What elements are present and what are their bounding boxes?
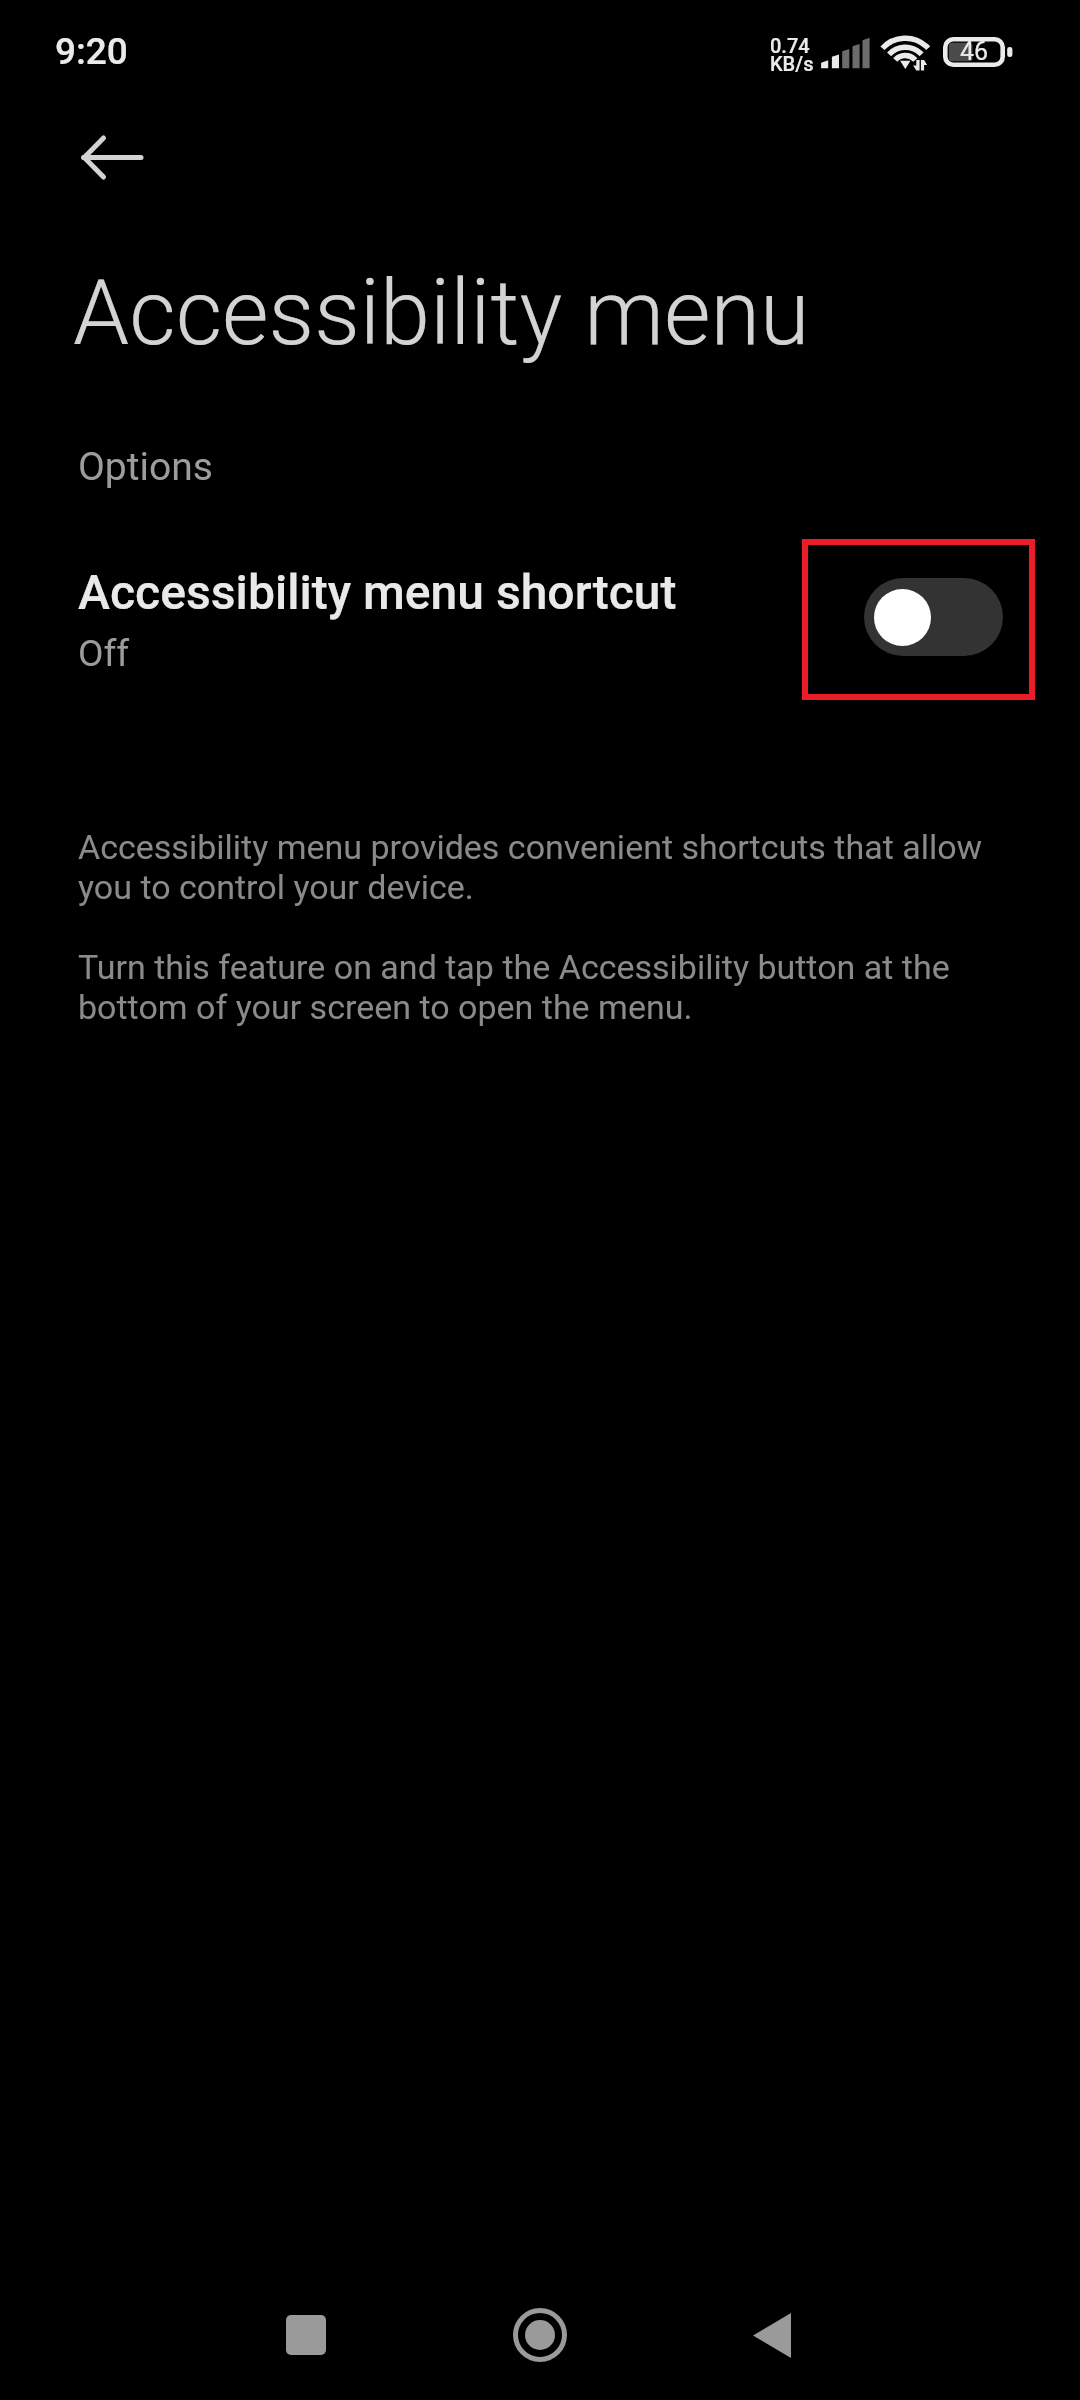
- staticText: 9:20: [55, 30, 128, 73]
- staticText: Off: [78, 632, 130, 675]
- button[interactable]: Recent apps: [234, 2263, 379, 2400]
- button[interactable]: Navigate up: [56, 110, 152, 206]
- staticText: KB/s: [770, 52, 814, 75]
- staticText: Accessibility menu: [73, 261, 810, 366]
- staticText: 46: [960, 37, 989, 66]
- staticText: Options: [78, 444, 213, 490]
- staticText: 0.74: [770, 34, 810, 57]
- button[interactable]: Accessibility menu shortcut: [0, 540, 1080, 698]
- button[interactable]: Accessibility menu shortcut, off: [864, 578, 1003, 656]
- button[interactable]: Back: [699, 2263, 844, 2400]
- staticText: Accessibility menu shortcut: [78, 564, 677, 620]
- staticText: Accessibility menu provides convenient s…: [78, 827, 998, 1027]
- button[interactable]: Home: [467, 2262, 612, 2400]
